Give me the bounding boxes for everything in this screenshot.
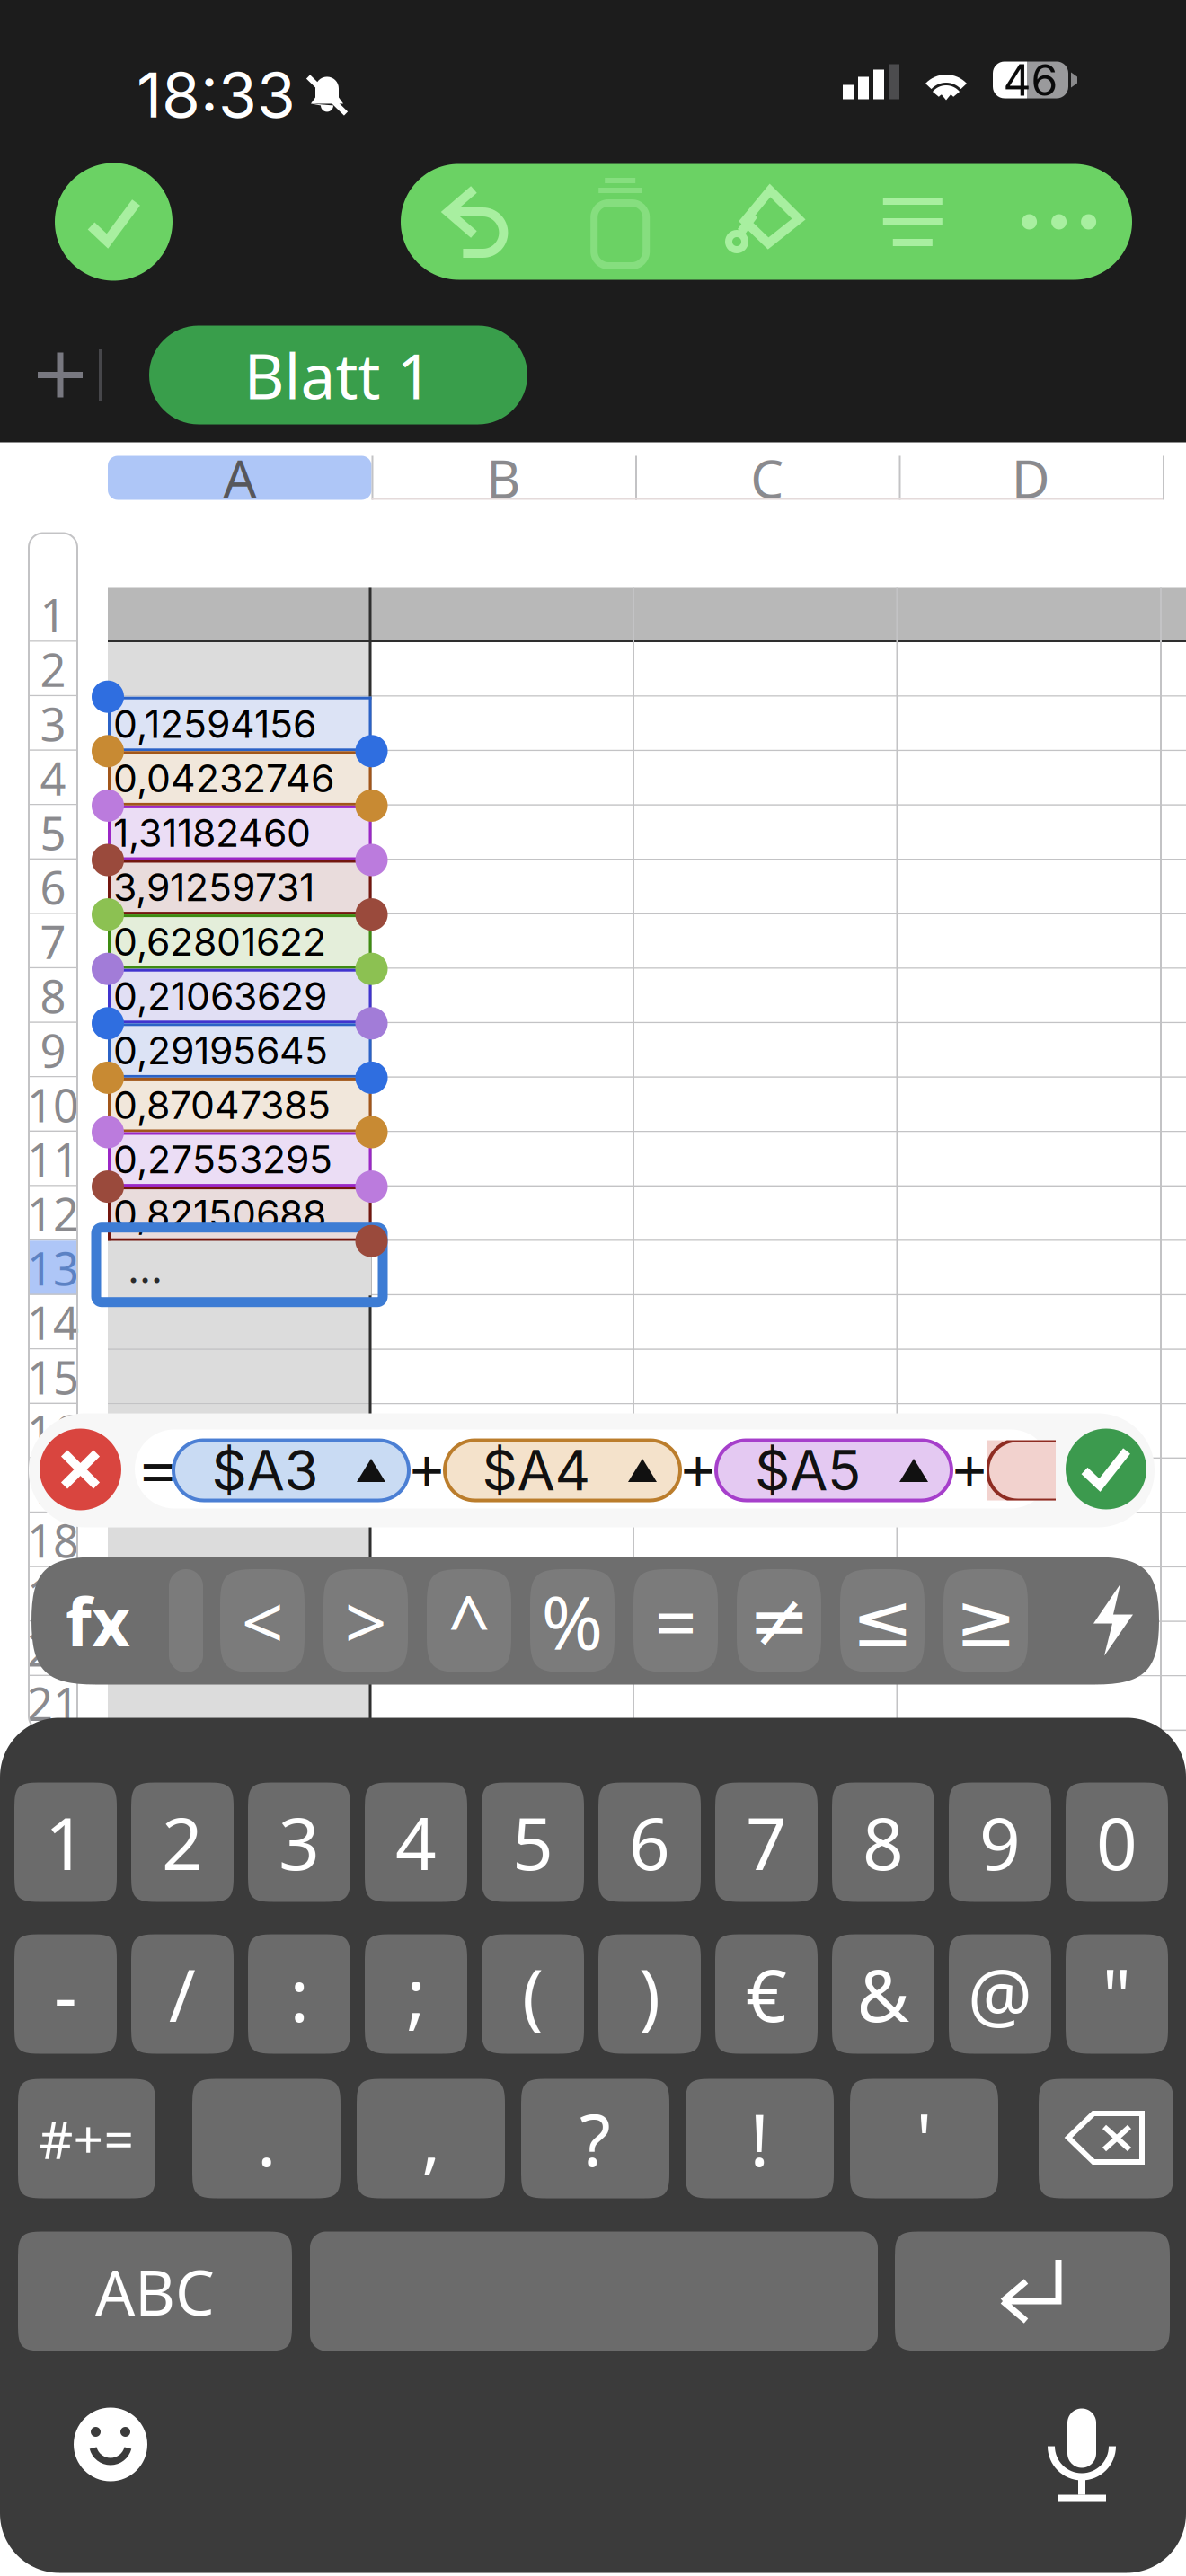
button[interactable]: < [220,1569,305,1672]
staticText: ' [916,2091,932,2186]
staticText: 19 [27,1564,79,1625]
button[interactable]: Format [693,164,840,280]
staticText: % [541,1571,603,1670]
button[interactable]: " [1066,1934,1168,2054]
staticText: $A3 [212,1437,319,1504]
button[interactable]: 4 [365,1782,467,1902]
staticText: ; [407,1946,425,2042]
button[interactable]: Done [55,163,173,281]
button[interactable]: ≥ [943,1569,1028,1672]
button[interactable]: 5 [482,1782,584,1902]
staticText: 0,62801622 [113,918,326,965]
staticText: Blatt 1 [244,334,433,416]
button[interactable]: € [715,1934,818,2054]
staticText: 13 [27,1238,79,1298]
staticText: C [750,443,784,513]
staticText: " [1102,1946,1132,2042]
button[interactable]: ' [850,2079,998,2198]
button[interactable]: - [14,1934,117,2054]
button[interactable]: % [530,1569,615,1672]
button[interactable]: 6 [598,1782,701,1902]
button[interactable]: D [899,456,1163,500]
button[interactable]: $A4 [445,1440,680,1500]
button[interactable]: 1 [14,1782,117,1902]
staticText: 8 [40,966,66,1026]
button[interactable]: Functions [1070,1569,1156,1672]
staticText: 1 [40,585,66,645]
button[interactable]: 8 [832,1782,934,1902]
button[interactable]: / [131,1934,234,2054]
button[interactable]: ≠ [737,1569,821,1672]
button[interactable]: Text options [840,164,986,280]
button[interactable]: ^ [427,1569,511,1672]
button[interactable]: Dictate [1044,2396,1120,2493]
button[interactable]: & [832,1934,934,2054]
staticText: . [257,2091,276,2186]
button[interactable]: B [372,456,635,500]
button[interactable]: 9 [949,1782,1051,1902]
button[interactable]: : [248,1934,350,2054]
button[interactable]: Accept [1066,1429,1146,1509]
staticText: - [54,1946,77,2042]
button[interactable]: Delete [1039,2079,1173,2198]
staticText: ! [750,2091,770,2186]
staticText: B [486,443,520,513]
button[interactable]: ≤ [840,1569,925,1672]
button[interactable]: $A5 [716,1440,951,1500]
staticText: 18:33 [137,57,296,132]
staticText: $A5 [755,1437,861,1504]
button[interactable]: ) [598,1934,701,2054]
button[interactable]: fx [27,1569,169,1672]
staticText: 4 [40,748,66,808]
staticText: = [140,1429,176,1512]
button[interactable]: Paste [547,164,693,280]
staticText: 0,82150688 [113,1191,326,1237]
button[interactable]: Blatt 1 [149,326,527,424]
staticText: fx [66,1576,130,1665]
staticText: 5 [512,1794,553,1890]
staticText: 0,87047385 [113,1082,331,1128]
button[interactable]: #+= [18,2079,155,2198]
button[interactable]: More [986,164,1132,280]
button[interactable]: ( [482,1934,584,2054]
button[interactable]: . [192,2079,341,2198]
staticText: 21 [27,1673,79,1734]
staticText: ≤ [851,1579,913,1663]
button[interactable]: ? [521,2079,669,2198]
staticText: 2 [162,1794,203,1890]
button[interactable]: ; [365,1934,467,2054]
button[interactable]: 7 [715,1782,818,1902]
staticText: 9 [40,1020,66,1080]
staticText: 20 [27,1619,79,1679]
staticText: = [655,1571,697,1670]
button[interactable]: ABC [18,2232,292,2351]
staticText: ^ [448,1571,490,1670]
button[interactable]: Return [895,2232,1170,2351]
staticText: 5 [40,802,66,863]
button[interactable]: $A3 [173,1440,409,1500]
staticText: < [241,1571,283,1670]
button[interactable]: Selected cell A13 [96,1228,383,1302]
button[interactable]: = [633,1569,718,1672]
button[interactable]: Add sheet [38,326,83,424]
button[interactable]: Cancel [40,1429,121,1510]
button[interactable]: @ [949,1934,1051,2054]
button[interactable]: 2 [131,1782,234,1902]
button[interactable]: > [323,1569,408,1672]
button[interactable]: C [635,456,899,500]
staticText: A [223,443,256,513]
button[interactable]: A [108,456,372,500]
button[interactable]: Undo [401,164,547,280]
button[interactable]: 0 [1066,1782,1168,1902]
staticText: ? [580,2091,611,2186]
staticText: + [410,1431,444,1510]
staticText: 10 [27,1074,79,1135]
button[interactable]: , [357,2079,505,2198]
button[interactable]: Emoji [74,2408,147,2481]
staticText: 3 [279,1794,320,1890]
button[interactable]: 3 [248,1782,350,1902]
staticText: ) [639,1946,660,2042]
button[interactable]: ! [686,2079,834,2198]
staticText: 6 [40,857,66,917]
